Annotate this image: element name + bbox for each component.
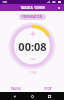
button[interactable]: STOP [32,85,64,92]
button[interactable]: Close [56,5,62,11]
staticText: STOP [44,87,52,91]
staticText: PAUSE [11,87,21,91]
staticText: 1 / 8 [29,71,36,75]
staticText: 00:08 [18,39,47,54]
button[interactable]: PREPARATION [19,14,46,20]
button[interactable]: Back [11,93,18,100]
button[interactable]: Recents [46,93,53,100]
staticText: TABATA TIMER [20,5,45,10]
button[interactable]: Decrease time [29,55,37,63]
button[interactable]: Home [29,93,36,100]
staticText: PREPARATION [22,15,43,19]
button[interactable]: Increase time [29,30,37,38]
button[interactable]: PAUSE [0,85,32,92]
